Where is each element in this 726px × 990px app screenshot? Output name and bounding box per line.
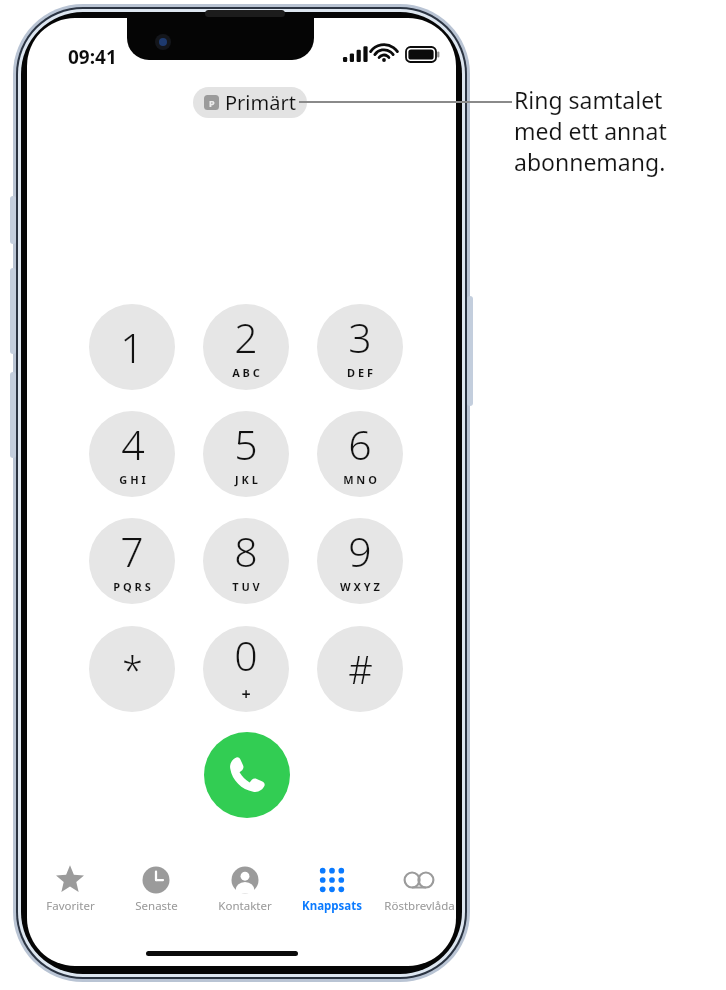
staticText: Knappsats [302, 898, 362, 914]
button[interactable]: * [89, 626, 175, 712]
button[interactable]: 7 [89, 518, 175, 604]
staticText: Kontakter [218, 898, 272, 914]
staticText: W X Y Z [340, 579, 380, 594]
staticText: Primärt [225, 89, 296, 116]
staticText: P [209, 97, 215, 109]
staticText: T U V [232, 579, 260, 594]
staticText: 0 [234, 627, 258, 683]
button[interactable]: Knappsats [287, 865, 377, 927]
staticText: 3 [348, 309, 372, 365]
button[interactable]: # [317, 626, 403, 712]
staticText: 4 [121, 416, 145, 472]
staticText: * [122, 643, 143, 695]
staticText: # [348, 643, 373, 695]
staticText: 1 [120, 319, 144, 375]
staticText: 09:41 [68, 44, 117, 70]
staticText: Senaste [135, 898, 178, 914]
button[interactable]: 8 [203, 518, 289, 604]
button[interactable]: Senaste [111, 865, 201, 927]
staticText: J K L [235, 472, 258, 487]
staticText: 7 [120, 523, 144, 579]
staticText: 8 [234, 523, 258, 579]
staticText: 9 [348, 523, 372, 579]
button[interactable]: Ring [204, 732, 290, 818]
button[interactable]: 9 [317, 518, 403, 604]
staticText: Röstbrevlåda [384, 898, 455, 914]
staticText: 2 [234, 309, 258, 365]
staticText: + [241, 683, 251, 705]
button[interactable]: 3 [317, 304, 403, 390]
staticText: M N O [343, 472, 377, 487]
staticText: Ring samtalet [514, 84, 663, 115]
staticText: A B C [232, 365, 260, 380]
staticText: 5 [234, 416, 258, 472]
button[interactable]: 1 [89, 304, 175, 390]
button[interactable]: 2 [203, 304, 289, 390]
button[interactable]: Kontakter [200, 865, 290, 927]
button[interactable]: P [193, 87, 307, 118]
staticText: D E F [347, 365, 373, 380]
button[interactable]: 4 [89, 411, 175, 497]
staticText: Favoriter [46, 898, 95, 914]
button[interactable]: Favoriter [27, 865, 115, 927]
button[interactable]: 6 [317, 411, 403, 497]
staticText: med ett annat [514, 115, 667, 146]
staticText: P Q R S [113, 579, 151, 594]
staticText: 6 [348, 416, 372, 472]
button[interactable]: 0 [203, 626, 289, 712]
staticText: G H I [119, 472, 146, 487]
button[interactable]: Röstbrevlåda [374, 865, 456, 927]
staticText: abonnemang. [514, 146, 666, 177]
button[interactable]: 5 [203, 411, 289, 497]
